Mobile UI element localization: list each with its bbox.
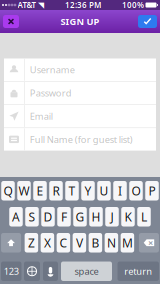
- staticText: G: [75, 209, 84, 225]
- button[interactable]: D: [41, 207, 55, 226]
- staticText: ◥: [38, 0, 44, 10]
- button[interactable]: return: [117, 261, 159, 281]
- staticText: A: [12, 209, 20, 225]
- staticText: ×: [148, 237, 153, 249]
- button[interactable]: X: [41, 233, 54, 252]
- staticText: 123: [4, 265, 19, 277]
- staticText: I: [118, 183, 122, 199]
- button[interactable]: Done: [138, 15, 157, 28]
- staticText: F: [61, 209, 67, 225]
- button[interactable]: L: [137, 207, 151, 226]
- staticText: Password: [30, 87, 72, 99]
- button[interactable]: A: [9, 207, 23, 226]
- button[interactable]: S: [25, 207, 39, 226]
- button[interactable]: K: [121, 207, 135, 226]
- staticText: M: [122, 235, 133, 251]
- staticText: R: [52, 183, 59, 199]
- button[interactable]: Y: [81, 181, 95, 200]
- button[interactable]: Close: [3, 15, 19, 28]
- staticText: D: [43, 209, 52, 225]
- staticText: AT&T: [17, 0, 36, 10]
- button[interactable]: N: [105, 233, 118, 252]
- button[interactable]: T: [65, 181, 79, 200]
- staticText: J: [110, 209, 113, 225]
- staticText: E: [36, 183, 43, 199]
- button[interactable]: Dictation: [43, 261, 58, 281]
- button[interactable]: O: [129, 181, 143, 200]
- staticText: C: [59, 235, 67, 251]
- button[interactable]: J: [105, 207, 119, 226]
- staticText: O: [131, 183, 140, 199]
- button[interactable]: P: [145, 181, 159, 200]
- staticText: Full Name (for guest list): [30, 133, 133, 146]
- button[interactable]: Backspace: [139, 233, 159, 252]
- button[interactable]: F: [57, 207, 71, 226]
- staticText: 100%: [122, 0, 144, 10]
- button[interactable]: E: [33, 181, 47, 200]
- button[interactable]: G: [73, 207, 87, 226]
- staticText: Z: [28, 235, 35, 251]
- button[interactable]: Shift: [1, 233, 21, 252]
- staticText: X: [44, 235, 51, 251]
- button[interactable]: Q: [1, 181, 15, 200]
- staticText: S: [28, 209, 35, 225]
- staticText: W: [18, 183, 29, 199]
- button[interactable]: Z: [25, 233, 38, 252]
- button[interactable]: U: [97, 181, 111, 200]
- button[interactable]: space: [61, 261, 112, 281]
- staticText: L: [141, 209, 147, 225]
- staticText: V: [76, 235, 83, 251]
- staticText: 12:36 PM: [65, 0, 101, 10]
- staticText: B: [91, 235, 99, 251]
- staticText: Email: [30, 110, 53, 122]
- staticText: K: [124, 209, 131, 225]
- staticText: space: [74, 265, 98, 277]
- staticText: Y: [84, 183, 91, 199]
- button[interactable]: B: [89, 233, 102, 252]
- staticText: H: [91, 209, 100, 225]
- staticText: Username: [30, 64, 75, 76]
- button[interactable]: Switch keyboard: [24, 261, 40, 281]
- staticText: N: [107, 235, 116, 251]
- button[interactable]: H: [89, 207, 103, 226]
- staticText: SIGN UP: [60, 15, 99, 28]
- button[interactable]: M: [121, 233, 134, 252]
- staticText: return: [124, 265, 152, 277]
- staticText: P: [148, 183, 155, 199]
- button[interactable]: V: [73, 233, 86, 252]
- button[interactable]: I: [113, 181, 127, 200]
- staticText: U: [99, 183, 108, 199]
- button[interactable]: R: [49, 181, 63, 200]
- button[interactable]: 123: [1, 261, 21, 281]
- staticText: Q: [3, 183, 12, 199]
- button[interactable]: W: [17, 181, 31, 200]
- button[interactable]: C: [57, 233, 70, 252]
- staticText: T: [68, 183, 75, 199]
